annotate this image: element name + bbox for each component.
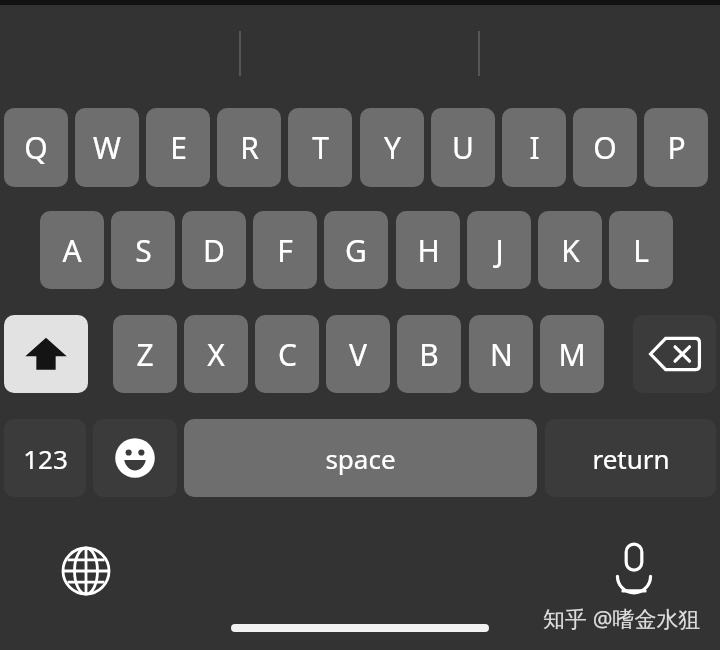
staticText: 知乎 @嗜金水狙	[543, 603, 701, 633]
staticText: 123	[23, 441, 68, 476]
button[interactable]: Q	[4, 108, 68, 187]
button[interactable]: B	[397, 315, 461, 393]
staticText: E	[170, 127, 187, 168]
button[interactable]: U	[431, 108, 495, 187]
staticText: L	[633, 230, 649, 271]
button[interactable]: K	[538, 211, 602, 289]
button[interactable]: S	[111, 211, 175, 289]
staticText: B	[419, 334, 439, 375]
button[interactable]: V	[326, 315, 390, 393]
staticText: A	[62, 230, 82, 271]
staticText: Q	[24, 127, 48, 168]
staticText: X	[207, 334, 225, 375]
button[interactable]: O	[573, 108, 637, 187]
staticText: F	[277, 230, 293, 271]
button[interactable]: W	[75, 108, 139, 187]
button[interactable]: G	[324, 211, 388, 289]
button[interactable]: Emoji keyboard	[93, 419, 177, 497]
staticText: J	[495, 230, 504, 271]
button[interactable]: P	[644, 108, 708, 187]
staticText: M	[558, 334, 586, 375]
button[interactable]: J	[467, 211, 531, 289]
button[interactable]: M	[540, 315, 604, 393]
staticText: S	[135, 230, 152, 271]
button[interactable]: Z	[113, 315, 177, 393]
staticText: Y	[384, 127, 401, 168]
staticText: P	[667, 127, 686, 168]
button[interactable]: A	[40, 211, 104, 289]
button[interactable]: Dictation	[600, 534, 668, 602]
staticText: G	[345, 230, 367, 271]
staticText: K	[561, 230, 580, 271]
button[interactable]: Backspace	[633, 315, 716, 393]
button[interactable]: 123	[4, 419, 86, 497]
button[interactable]: X	[184, 315, 248, 393]
staticText: N	[490, 334, 513, 375]
staticText: W	[93, 127, 121, 168]
button[interactable]: C	[255, 315, 319, 393]
button[interactable]: E	[146, 108, 210, 187]
button[interactable]: Shift	[4, 315, 88, 393]
button[interactable]: D	[182, 211, 246, 289]
button[interactable]: T	[288, 108, 352, 187]
button[interactable]: R	[217, 108, 281, 187]
staticText: Z	[136, 334, 154, 375]
staticText: I	[529, 127, 540, 168]
button[interactable]: return	[545, 419, 716, 497]
staticText: return	[592, 441, 670, 476]
button[interactable]: Y	[360, 108, 424, 187]
staticText: V	[349, 334, 367, 375]
staticText: H	[417, 230, 440, 271]
button[interactable]: N	[469, 315, 533, 393]
staticText: U	[452, 127, 474, 168]
staticText: T	[312, 127, 329, 168]
button[interactable]: Switch keyboard language	[52, 537, 120, 605]
staticText: space	[325, 441, 396, 476]
staticText: R	[240, 127, 259, 168]
button[interactable]: H	[396, 211, 460, 289]
button[interactable]: space	[184, 419, 537, 497]
staticText: O	[593, 127, 617, 168]
button[interactable]: L	[609, 211, 673, 289]
staticText: C	[278, 334, 297, 375]
button[interactable]: F	[253, 211, 317, 289]
staticText: D	[203, 230, 225, 271]
button[interactable]: I	[502, 108, 566, 187]
